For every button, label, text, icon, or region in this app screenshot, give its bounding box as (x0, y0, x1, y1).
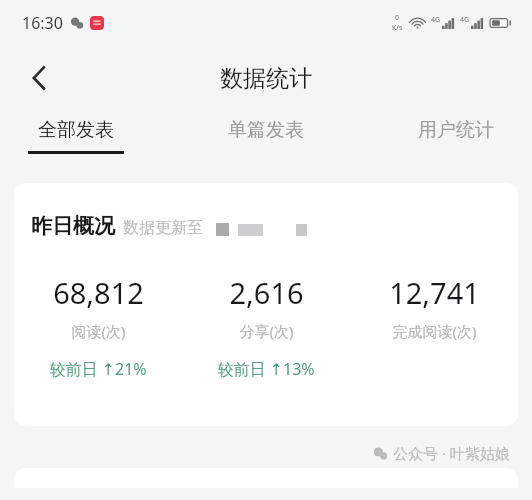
button[interactable]: 用户统计 (398, 110, 514, 162)
staticText: 分享(次) (239, 321, 294, 341)
staticText: 4G (460, 15, 470, 25)
staticText: 单篇发表 (228, 118, 304, 142)
staticText: 昨日概况 (31, 213, 115, 239)
button[interactable]: 单篇发表 (208, 110, 324, 162)
staticText: 公众号 · 叶紫姑娘 (393, 443, 510, 463)
staticText: 完成阅读(次) (392, 321, 477, 341)
staticText: 数据统计 (220, 64, 312, 93)
staticText: 用户统计 (418, 118, 494, 142)
staticText: K/s (392, 23, 403, 33)
staticText: 较前日 ↑13% (217, 358, 315, 380)
button[interactable]: 全部发表 (18, 110, 134, 162)
staticText: 0 (395, 13, 400, 23)
staticText: 2,616 (229, 273, 304, 312)
staticText: 数据更新至 (123, 218, 203, 238)
staticText: 较前日 ↑21% (49, 358, 147, 380)
button[interactable]: 昨日概况 (14, 183, 518, 426)
staticText: 全部发表 (38, 118, 114, 142)
staticText: 16:30 (22, 12, 63, 34)
button[interactable]: Back (16, 55, 62, 101)
staticText: 4G (431, 15, 441, 25)
staticText: 12,741 (389, 273, 480, 312)
staticText: 68,812 (53, 273, 144, 312)
staticText: 阅读(次) (71, 321, 126, 341)
